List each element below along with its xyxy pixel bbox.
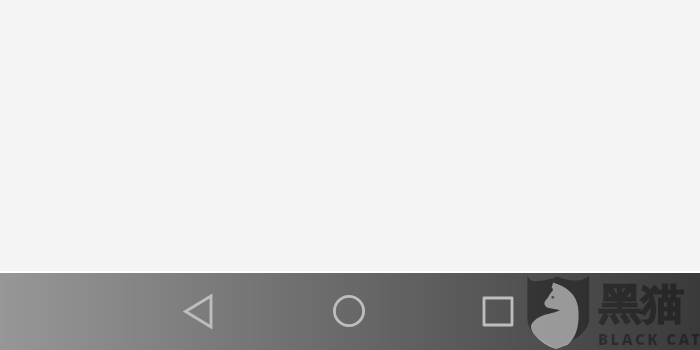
button[interactable]: Recents (474, 287, 522, 335)
button[interactable]: Home (325, 287, 373, 335)
button[interactable]: Back (175, 287, 223, 335)
staticText: 黑猫 (598, 278, 683, 332)
staticText: BLACK CAT (598, 329, 700, 349)
